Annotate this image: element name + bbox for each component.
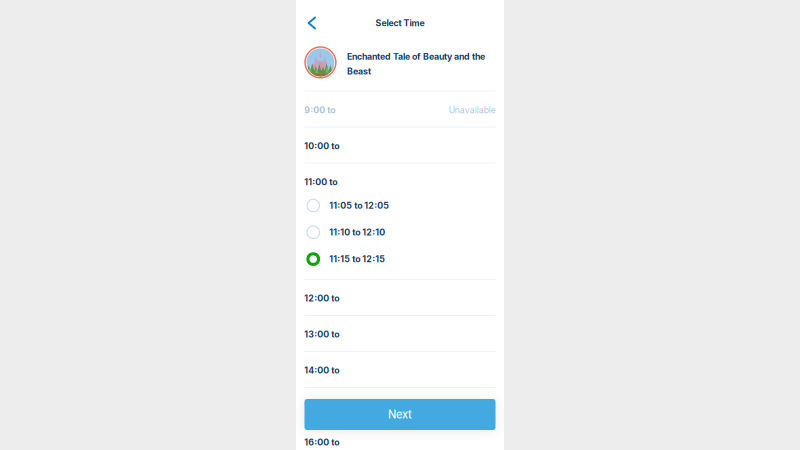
button[interactable]: 9:00 to [304, 92, 496, 127]
staticText: Unavailable [449, 105, 496, 115]
button[interactable]: 11:15 to 12:15 [304, 246, 496, 272]
staticText: 13:00 to [304, 329, 339, 340]
staticText: 9:00 to [304, 105, 335, 115]
staticText: Next [388, 408, 412, 421]
staticText: 11:15 to 12:15 [329, 254, 385, 264]
staticText: Select Time [375, 18, 424, 28]
staticText: 10:00 to [304, 141, 339, 151]
button[interactable]: 14:00 to [304, 352, 496, 387]
button[interactable]: 15:00 to [304, 388, 496, 423]
staticText: 14:00 to [304, 365, 339, 376]
button[interactable]: 11:00 to [304, 167, 496, 195]
button[interactable]: 13:00 to [304, 316, 496, 351]
staticText: 15:00 to [304, 401, 339, 412]
button[interactable]: Next [304, 399, 495, 430]
staticText: Enchanted Tale of Beauty and the Beast [347, 51, 485, 77]
button[interactable]: 12:00 to [304, 280, 496, 315]
button[interactable]: 11:10 to 12:10 [304, 219, 496, 246]
staticText: 11:00 to [304, 177, 337, 187]
button[interactable]: 11:05 to 12:05 [304, 192, 496, 219]
button[interactable]: Back [304, 9, 324, 37]
button[interactable]: 16:00 to [304, 424, 496, 450]
staticText: 11:05 to 12:05 [329, 200, 389, 211]
staticText: 12:00 to [304, 293, 339, 304]
staticText: 11:10 to 12:10 [329, 227, 385, 238]
button[interactable]: 10:00 to [304, 128, 496, 163]
staticText: 16:00 to [304, 437, 339, 448]
